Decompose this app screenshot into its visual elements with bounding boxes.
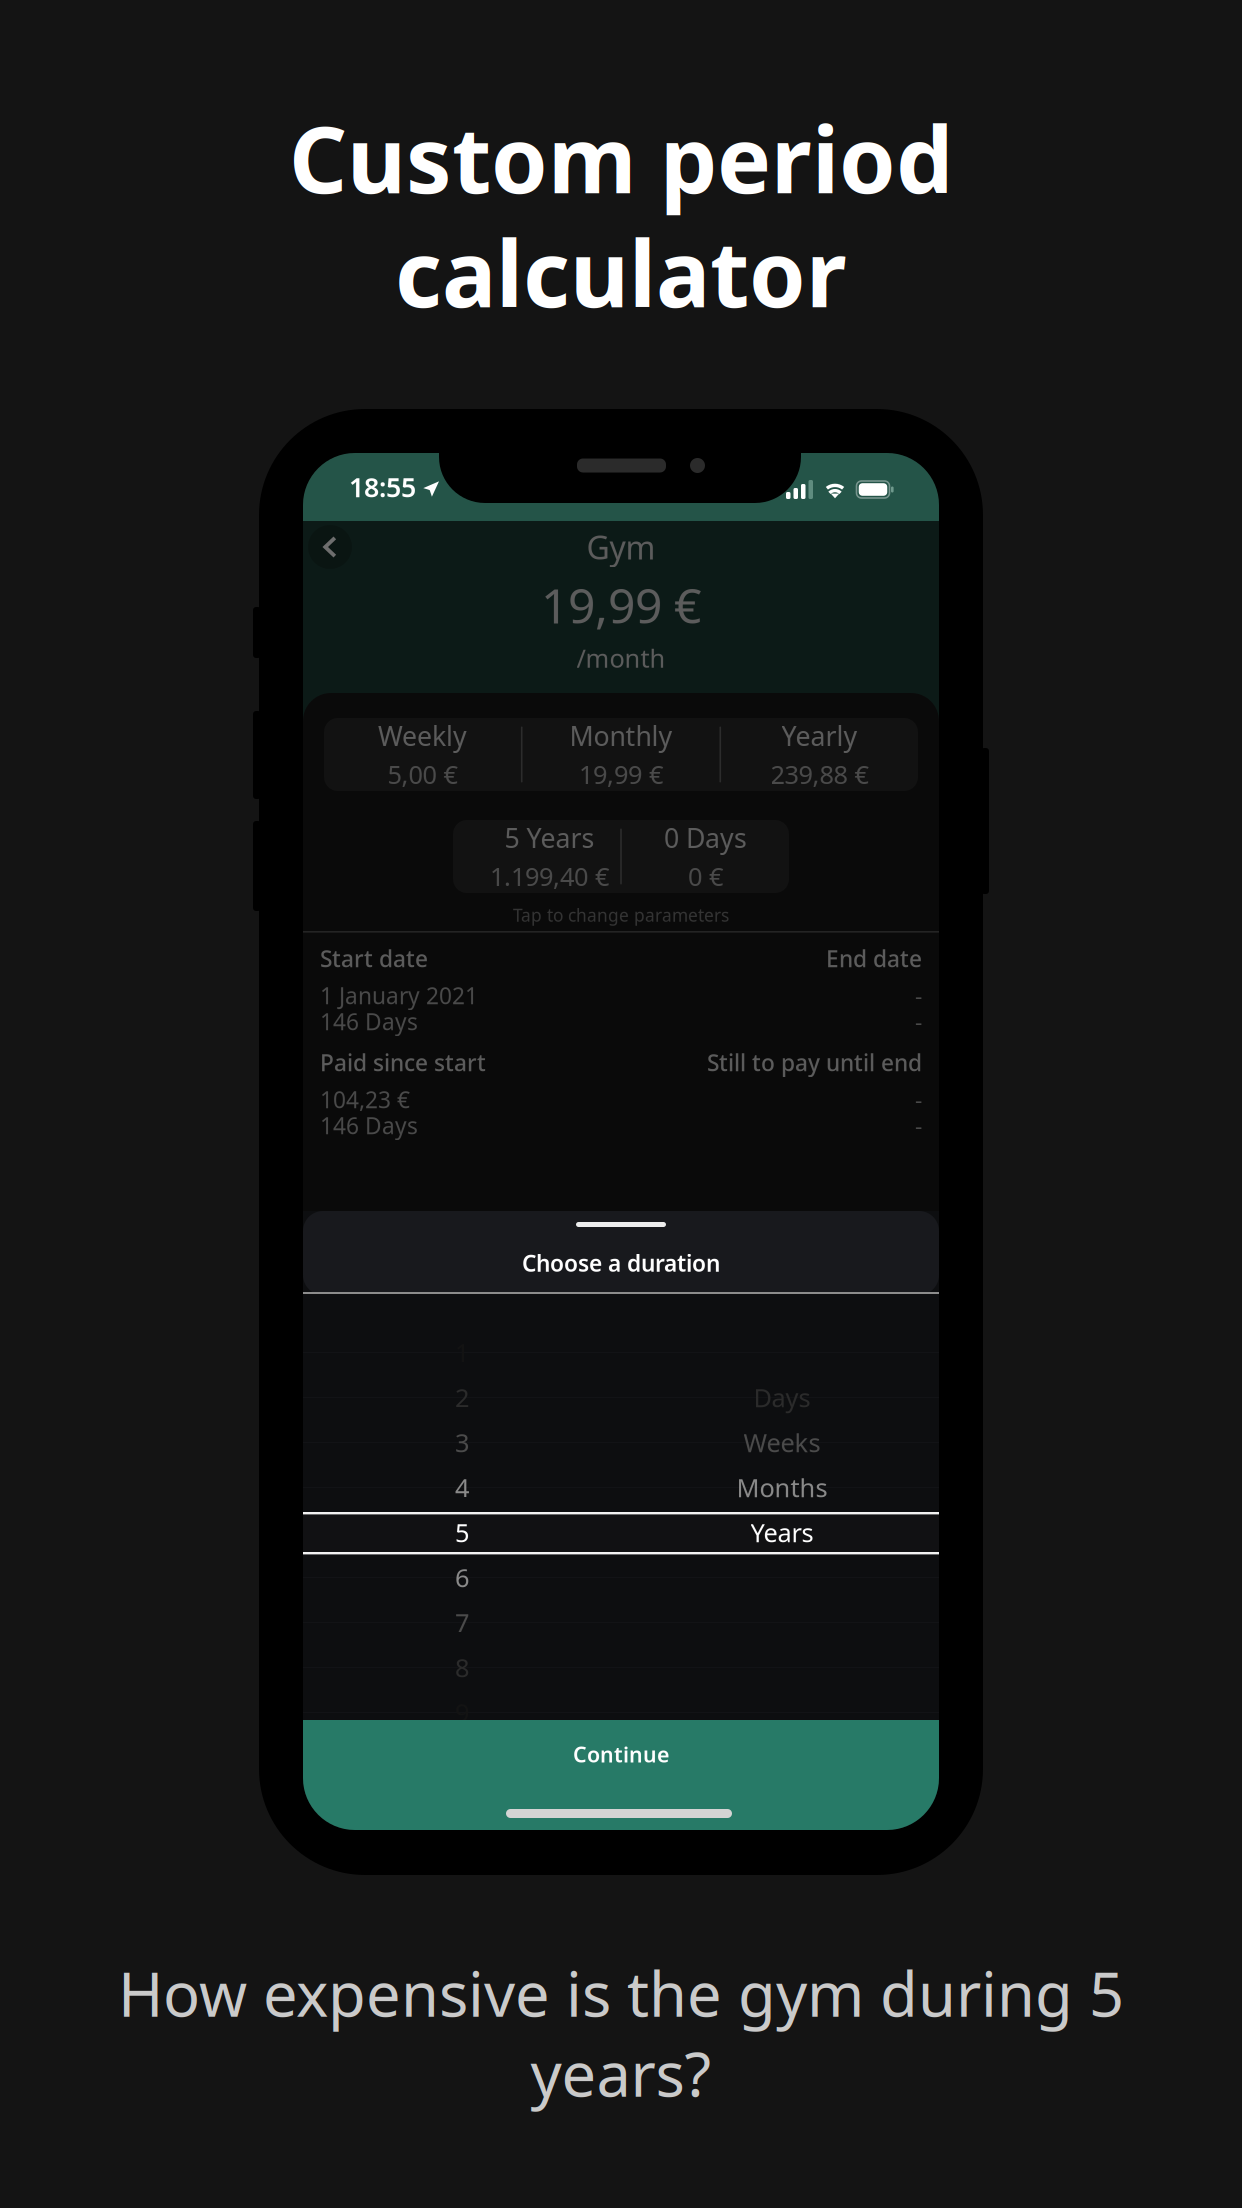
staticText: Months xyxy=(736,1471,827,1504)
staticText: 18:55 xyxy=(349,469,416,505)
button[interactable]: 5 Years xyxy=(453,820,789,893)
staticText: - xyxy=(915,1084,922,1114)
staticText: 146 Days xyxy=(320,1110,418,1140)
staticText: 7 xyxy=(455,1606,469,1639)
button[interactable]: Weekly xyxy=(324,718,918,791)
staticText: Still to pay until end xyxy=(707,1047,922,1077)
staticText: 6 xyxy=(455,1561,469,1594)
staticText: Choose a duration xyxy=(522,1248,720,1278)
staticText: Monthly xyxy=(569,718,672,753)
staticText: 104,23 € xyxy=(320,1084,410,1114)
staticText: years? xyxy=(530,2032,711,2114)
staticText: How expensive is the gym during 5 xyxy=(118,1952,1124,2034)
staticText: Continue xyxy=(573,1740,669,1768)
staticText: 2 xyxy=(455,1381,469,1414)
staticText: 3 xyxy=(455,1426,469,1459)
staticText: 0 € xyxy=(688,859,723,893)
button[interactable]: Continue xyxy=(303,1720,939,1830)
staticText: 8 xyxy=(455,1651,469,1684)
staticText: End date xyxy=(826,943,922,973)
staticText: 0 Days xyxy=(664,820,747,855)
staticText: 1 January 2021 xyxy=(320,980,478,1010)
staticText: 146 Days xyxy=(320,1006,418,1036)
staticText: Paid since start xyxy=(320,1047,486,1077)
staticText: Tap to change parameters xyxy=(513,903,729,926)
staticText: 5,00 € xyxy=(387,757,457,791)
staticText: Start date xyxy=(320,943,428,973)
staticText: 19,99 € xyxy=(579,757,663,791)
staticText: Gym xyxy=(586,526,655,568)
staticText: 5 Years xyxy=(505,820,595,855)
button[interactable]: Choose a duration xyxy=(303,1211,939,1295)
staticText: 1.199,40 € xyxy=(490,859,609,893)
staticText: Days xyxy=(753,1381,810,1414)
staticText: /month xyxy=(576,641,665,675)
staticText: - xyxy=(915,980,922,1010)
staticText: Yearly xyxy=(781,718,857,753)
staticText: - xyxy=(915,1110,922,1140)
staticText: 9 xyxy=(455,1696,469,1729)
staticText: Weekly xyxy=(378,718,467,753)
staticText: Custom period xyxy=(289,98,953,218)
staticText: 239,88 € xyxy=(770,757,868,791)
button[interactable]: Back xyxy=(308,525,352,569)
staticText: calculator xyxy=(395,212,847,332)
staticText: 4 xyxy=(455,1471,469,1504)
staticText: - xyxy=(915,1006,922,1036)
staticText: Weeks xyxy=(743,1426,820,1459)
staticText: 19,99 € xyxy=(541,573,701,637)
staticText: 5 xyxy=(455,1516,469,1549)
staticText: Years xyxy=(750,1516,813,1549)
